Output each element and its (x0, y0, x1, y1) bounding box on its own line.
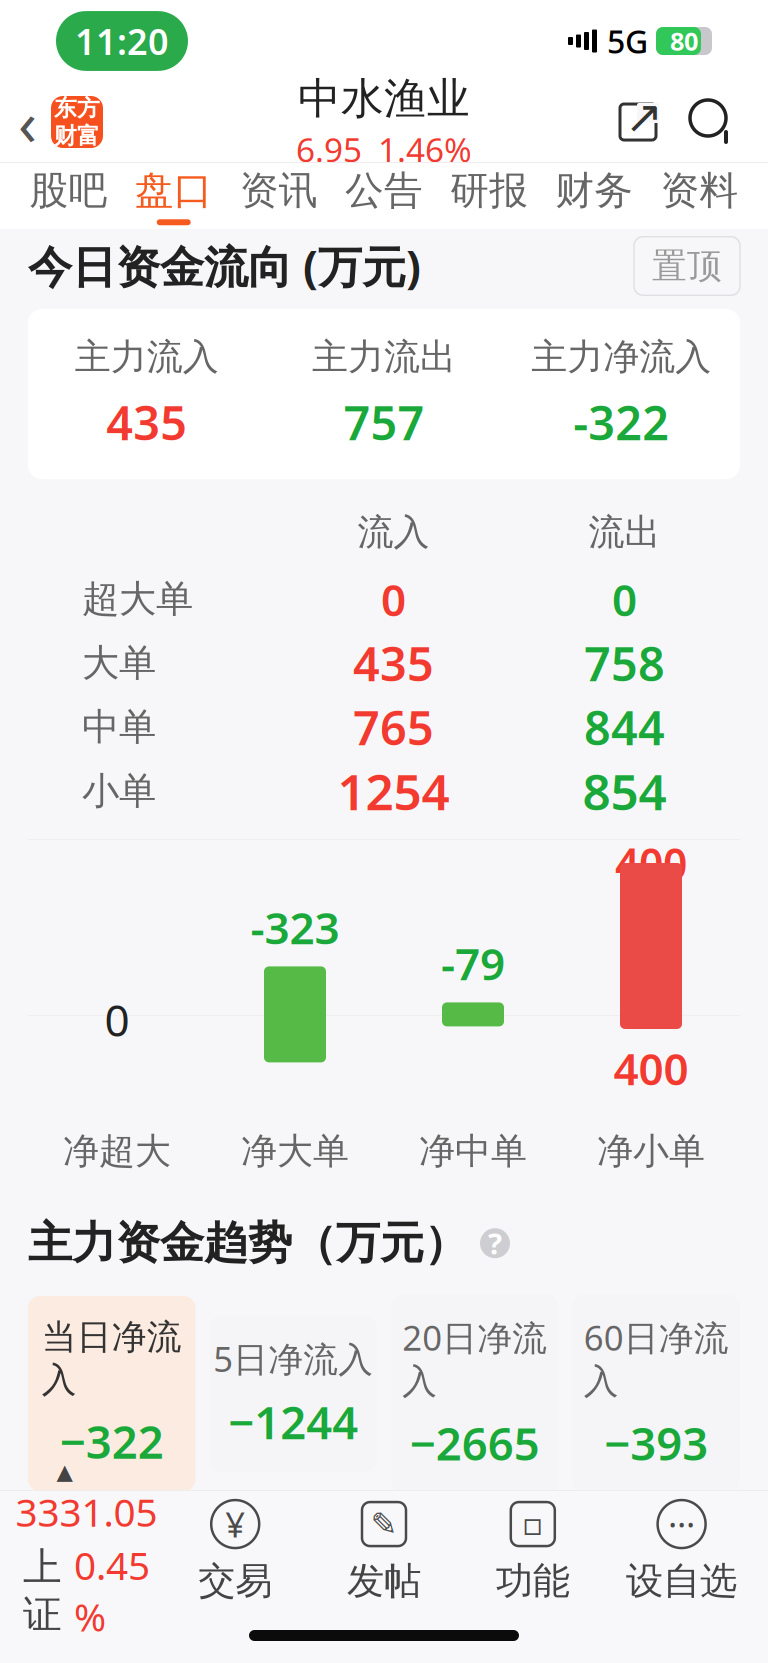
staticText: 小单 (82, 768, 156, 814)
staticText: ✎ (370, 1506, 397, 1542)
staticText: ↗ (625, 91, 663, 143)
staticText: 主力净流入 (531, 335, 711, 379)
button[interactable]: 5日净流入 (209, 1315, 377, 1472)
staticText: 中水渔业 (298, 73, 470, 125)
staticText: 435 (353, 632, 434, 694)
staticText: 854 (582, 758, 666, 824)
staticText: 765 (353, 696, 434, 758)
staticText: 公告 (345, 167, 423, 214)
staticText: 功能 (496, 1558, 570, 1604)
staticText: 20日净流入 (402, 1314, 547, 1403)
staticText: 757 (343, 391, 424, 453)
button[interactable]: 财务 (542, 163, 647, 229)
staticText: 0 (381, 570, 406, 628)
button[interactable]: ··· (607, 1498, 756, 1604)
staticText: −322 (60, 1411, 164, 1471)
staticText: -322 (573, 391, 669, 453)
staticText: 股价 (295, 1527, 365, 1570)
staticText: -79 (441, 934, 505, 992)
button[interactable]: ▫ (458, 1498, 607, 1604)
staticText: 上证 (23, 1543, 62, 1638)
staticText: 0.45% (74, 1539, 150, 1642)
staticText: 435 (106, 391, 187, 453)
staticText: ‹ (18, 81, 37, 163)
button[interactable]: 公告 (331, 163, 436, 229)
staticText: 交易 (198, 1558, 272, 1604)
staticText: 发帖 (347, 1558, 421, 1604)
staticText: 置顶 (652, 245, 722, 287)
staticText: ▫ (522, 1506, 544, 1542)
staticText: 844 (584, 696, 665, 758)
staticText: 净中单 (419, 1129, 527, 1173)
staticText: 流出 (588, 510, 660, 554)
button[interactable]: 20日净流入 (391, 1294, 558, 1493)
button[interactable]: 置顶 (634, 237, 740, 295)
staticText: 80 (670, 24, 698, 58)
button[interactable]: 资料 (647, 163, 752, 229)
staticText: 5G (607, 20, 648, 62)
staticText: −1244 (228, 1392, 358, 1452)
staticText: 盘口 (135, 167, 213, 214)
button[interactable]: Search (674, 82, 768, 162)
button[interactable]: ¥ (161, 1498, 310, 1604)
button[interactable]: ✎ (310, 1498, 458, 1604)
staticText: 研报 (450, 167, 528, 214)
staticText: 股吧 (30, 167, 108, 214)
staticText: 流入 (357, 510, 429, 554)
staticText: ¥ (225, 1501, 245, 1547)
staticText: ▲ (56, 1460, 72, 1484)
staticText: 60日净流入 (584, 1314, 729, 1403)
button[interactable]: 当日净流入 (28, 1296, 195, 1491)
button[interactable]: 60日净流入 (572, 1294, 740, 1493)
staticText: 主力净流入 (58, 1527, 233, 1570)
button[interactable]: 盘口 (121, 163, 226, 229)
staticText: 11:20 (75, 17, 169, 65)
staticText: 1254 (337, 758, 449, 824)
staticText: −393 (604, 1413, 708, 1473)
staticText: 当日净流入 (42, 1316, 182, 1401)
staticText: 6.95 (296, 127, 362, 171)
staticText: 财富 (54, 122, 100, 150)
staticText: 400 (613, 1039, 688, 1097)
staticText: 资讯 (240, 167, 318, 214)
staticText: 主力资金趋势（万元） (28, 1216, 468, 1270)
button[interactable]: Share (602, 82, 674, 162)
staticText: 主力流入 (75, 335, 219, 379)
staticText: 财务 (555, 167, 633, 214)
staticText: 净大单 (241, 1129, 349, 1173)
staticText: 大单 (82, 640, 156, 686)
staticText: 设自选 (626, 1558, 737, 1604)
staticText: 资料 (660, 167, 738, 214)
staticText: 今日资金流向 (万元) (28, 237, 421, 295)
staticText: 主力流出 (312, 335, 456, 379)
button[interactable]: 研报 (437, 163, 542, 229)
staticText: 0 (612, 570, 637, 628)
staticText: 净超大 (63, 1129, 171, 1173)
staticText: ··· (668, 1501, 695, 1547)
staticText: 3331.05 (15, 1486, 157, 1537)
staticText: 758 (584, 632, 665, 694)
button[interactable]: 股吧 (16, 163, 121, 229)
staticText: 中单 (82, 704, 156, 750)
button[interactable]: 资讯 (226, 163, 331, 229)
staticText: 1.46% (378, 127, 472, 171)
staticText: 净小单 (597, 1129, 705, 1173)
staticText: 400 (615, 835, 687, 891)
button[interactable]: Back (0, 82, 121, 162)
button[interactable]: ▲ (12, 1460, 161, 1642)
staticText: 东方 (54, 94, 100, 122)
staticText: 5日净流入 (213, 1335, 373, 1381)
staticText: −2665 (410, 1413, 540, 1473)
staticText: 0 (104, 990, 129, 1049)
staticText: ? (488, 1224, 502, 1263)
staticText: -323 (250, 898, 339, 956)
staticText: 超大单 (82, 576, 193, 622)
